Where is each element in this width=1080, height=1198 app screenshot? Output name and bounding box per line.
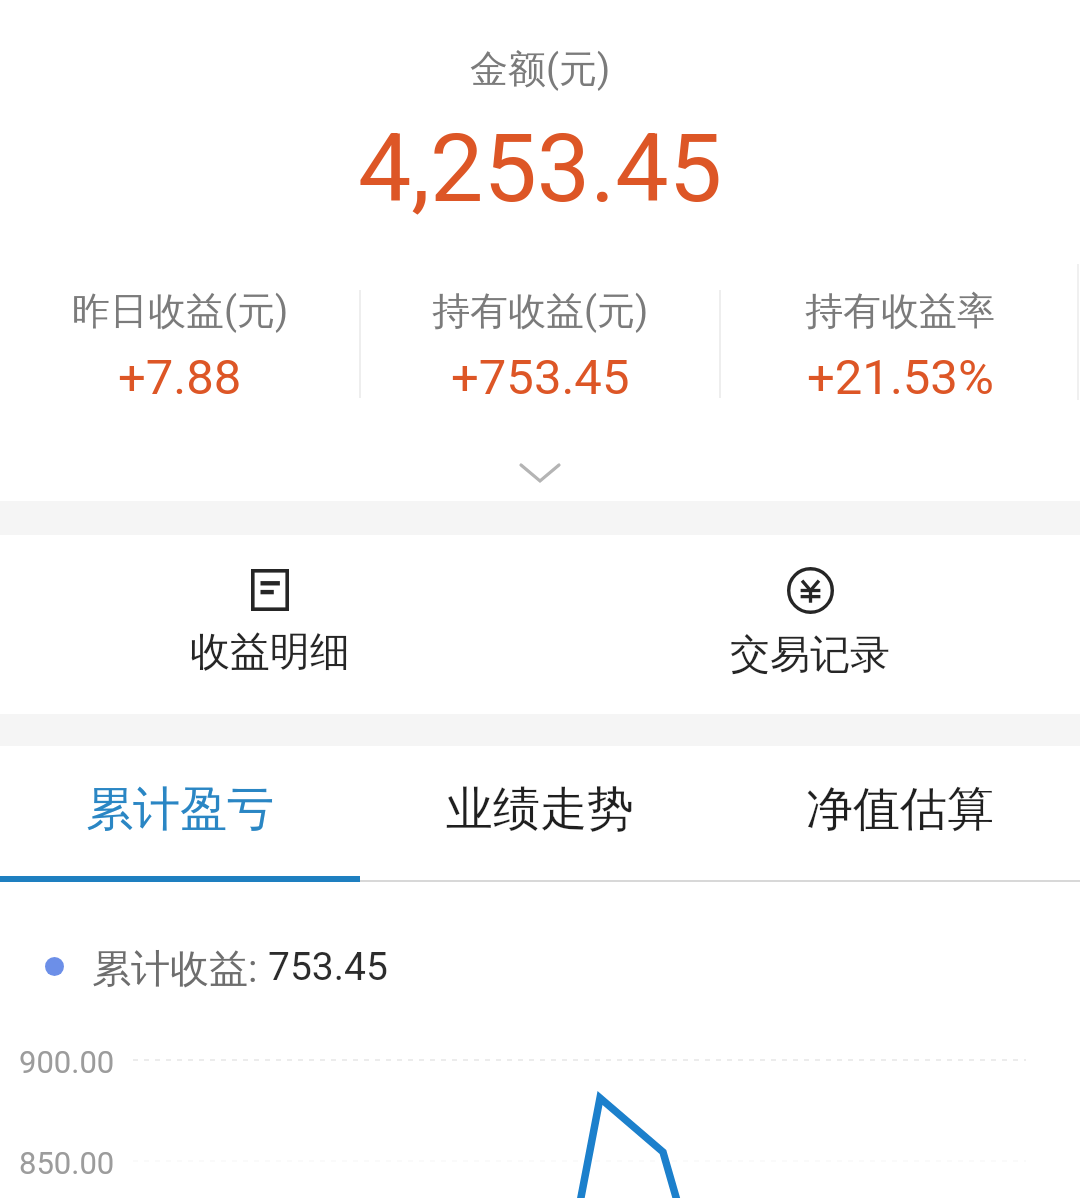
staticText: 金额(元) <box>0 45 1080 93</box>
button[interactable]: 持有收益(元) <box>360 287 720 399</box>
button[interactable]: 展开 <box>490 443 590 503</box>
staticText: +7.88 <box>118 349 242 399</box>
staticText: 850.00 <box>19 1145 115 1181</box>
staticText: 累计收益: <box>92 944 268 993</box>
staticText: 持有收益(元) <box>432 287 649 335</box>
button[interactable]: 昨日收益(元) <box>0 287 360 399</box>
button[interactable]: 交易记录 <box>540 533 1080 712</box>
staticText: 业绩走势 <box>446 780 634 839</box>
staticText: 753.45 <box>268 944 388 990</box>
staticText: 净值估算 <box>806 780 994 839</box>
staticText: 持有收益率 <box>805 287 995 335</box>
staticText: +21.53% <box>807 349 994 399</box>
staticText: +753.45 <box>451 349 630 399</box>
staticText: 昨日收益(元) <box>72 287 289 335</box>
staticText: 累计盈亏 <box>86 780 274 839</box>
staticText: 收益明细 <box>190 626 350 676</box>
staticText: 交易记录 <box>730 629 890 679</box>
button[interactable]: 收益明细 <box>0 533 540 712</box>
staticText: 900.00 <box>19 1044 115 1080</box>
button[interactable]: 累计盈亏 <box>0 743 360 875</box>
button[interactable]: 净值估算 <box>720 743 1080 875</box>
button[interactable]: 持有收益率 <box>720 287 1080 399</box>
button[interactable]: 业绩走势 <box>360 743 720 875</box>
staticText: 4,253.45 <box>0 113 1080 224</box>
